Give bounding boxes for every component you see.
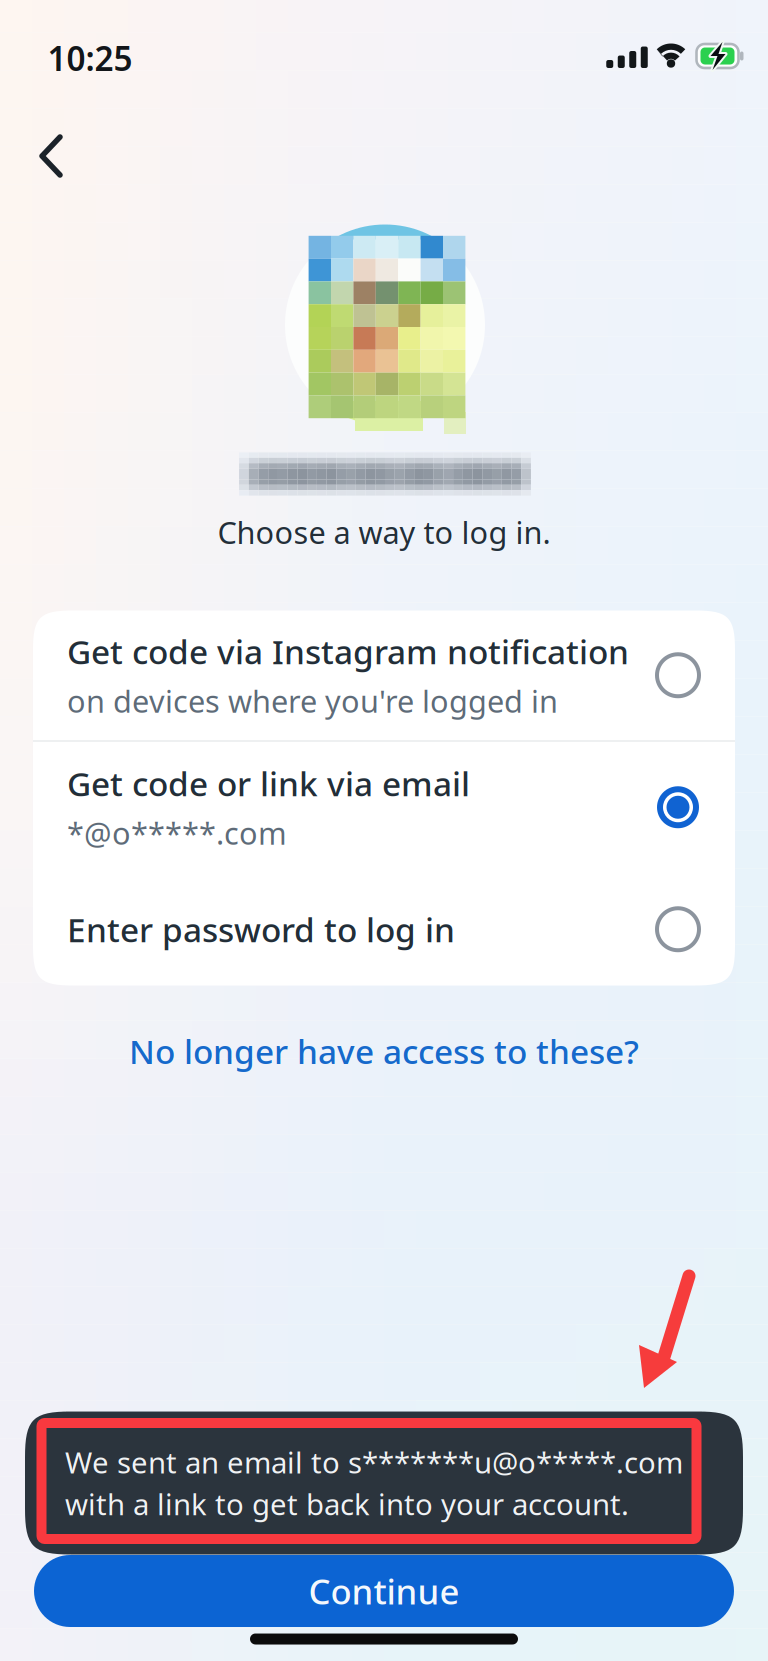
button[interactable]: No longer have access to these? (104, 1022, 664, 1080)
staticText: Enter password to log in (67, 907, 455, 951)
staticText: Get code via Instagram notification (67, 629, 629, 674)
staticText: *@o*****.com (67, 812, 287, 853)
staticText: Get code or link via email (67, 761, 470, 806)
staticText: with a link to get back into your accoun… (65, 1484, 629, 1523)
button[interactable]: Continue (34, 1555, 734, 1627)
staticText: Choose a way to log in. (217, 512, 550, 552)
staticText: No longer have access to these? (129, 1029, 639, 1073)
staticText: on devices where you're logged in (67, 680, 558, 721)
button[interactable]: Enter password to log in (33, 873, 735, 986)
button[interactable]: Back (28, 123, 94, 189)
button[interactable]: Get code or link via email (33, 742, 735, 873)
staticText: 10:25 (47, 36, 132, 80)
staticText: We sent an email to s*******u@o*****.com (65, 1442, 683, 1481)
button[interactable]: Get code via Instagram notification (33, 610, 735, 740)
staticText: Continue (308, 1568, 459, 1614)
